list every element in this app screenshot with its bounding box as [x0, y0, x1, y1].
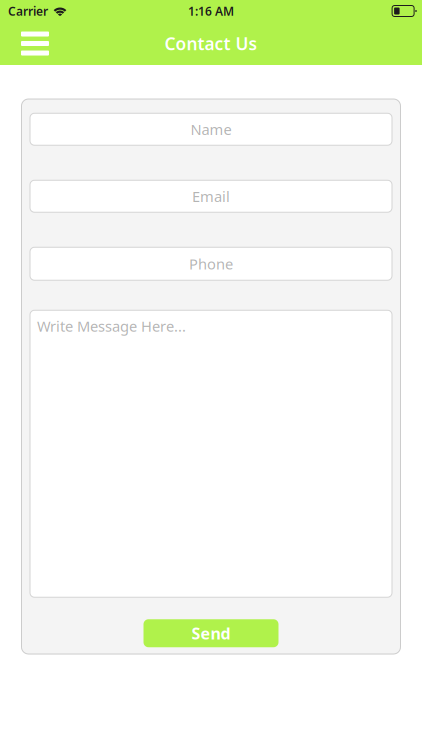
button[interactable]: Menu: [13, 22, 57, 64]
button[interactable]: Name: [30, 113, 392, 145]
staticText: Phone: [189, 254, 233, 273]
staticText: 1:16 AM: [188, 3, 234, 19]
staticText: Email: [192, 186, 230, 206]
staticText: Contact Us: [164, 32, 257, 55]
button[interactable]: Phone: [30, 247, 392, 280]
staticText: Send: [191, 623, 230, 644]
button[interactable]: Email: [30, 180, 392, 212]
staticText: Name: [190, 119, 231, 139]
staticText: Write Message Here...: [37, 316, 186, 336]
button[interactable]: Write Message Here...: [30, 310, 392, 597]
staticText: Carrier: [8, 3, 48, 19]
button[interactable]: Send: [143, 619, 278, 647]
